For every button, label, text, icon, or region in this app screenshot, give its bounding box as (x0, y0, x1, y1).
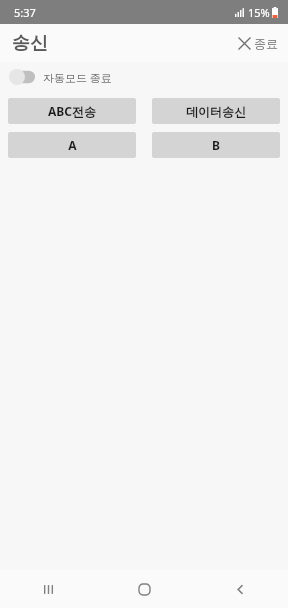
staticText: 15% (248, 5, 270, 20)
staticText: ABC전송 (48, 103, 96, 119)
button[interactable]: Close (229, 30, 288, 57)
staticText: 자동모드 종료 (43, 70, 112, 85)
button[interactable]: A (8, 132, 136, 158)
staticText: 송신 (12, 32, 48, 55)
button[interactable]: ABC전송 (8, 98, 136, 124)
staticText: B (212, 137, 220, 153)
other: Close (239, 38, 250, 49)
staticText: A (68, 137, 77, 153)
staticText: 데이터송신 (186, 104, 246, 119)
button[interactable]: Back (192, 570, 288, 608)
button[interactable]: B (152, 132, 280, 158)
button[interactable]: Recent apps (0, 570, 96, 608)
staticText: 5:37 (14, 5, 36, 20)
button[interactable]: Home (96, 570, 192, 608)
button[interactable]: 자동모드 종료 toggle (9, 69, 35, 85)
staticText: 종료 (254, 36, 278, 51)
button[interactable]: 데이터송신 (152, 98, 280, 124)
